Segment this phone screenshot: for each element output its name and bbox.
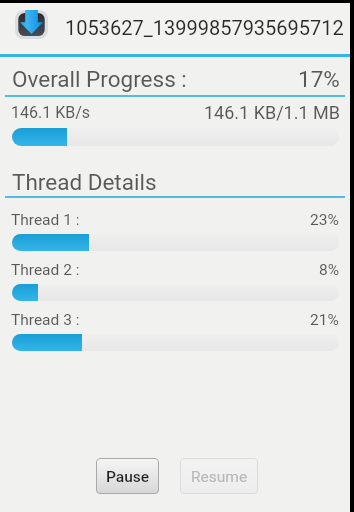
button[interactable]: Resume (180, 458, 258, 494)
staticText: 1053627_13999857935695712 (65, 16, 344, 39)
staticText: Thread 3 : (11, 311, 80, 329)
staticText: 146.1 KB/s (11, 103, 91, 122)
staticText: Overall Progress : (12, 66, 187, 92)
staticText: 146.1 KB/1.1 MB (204, 102, 340, 123)
staticText: Thread 1 : (11, 211, 80, 229)
button[interactable]: Pause (96, 458, 159, 494)
staticText: Thread 2 : (11, 261, 80, 279)
other: Download (15, 10, 48, 39)
staticText: Resume (191, 468, 248, 486)
staticText: 8% (319, 261, 340, 279)
staticText: Pause (106, 468, 150, 486)
staticText: Thread Details (12, 169, 157, 195)
staticText: 23% (310, 211, 339, 229)
staticText: 21% (310, 311, 339, 329)
staticText: 17% (298, 66, 340, 92)
